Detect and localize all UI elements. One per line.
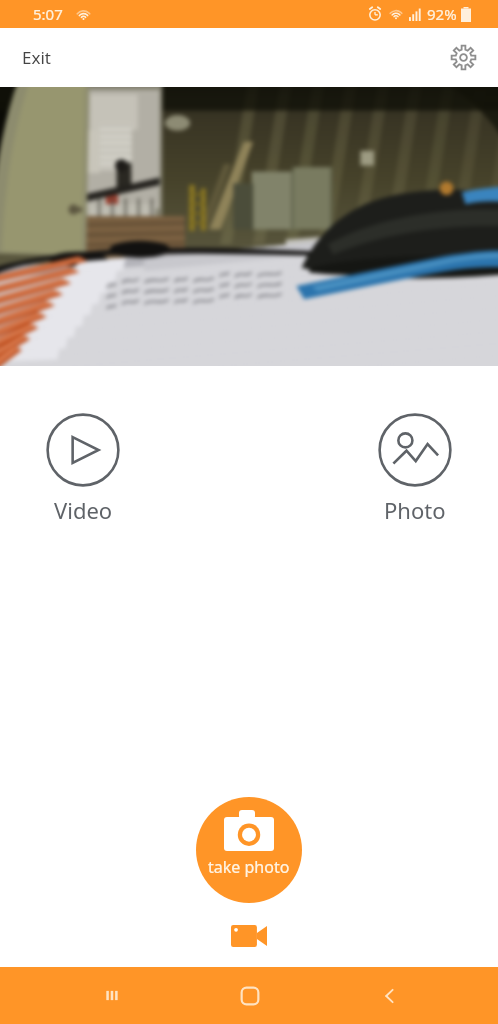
staticText: 5:07 [33, 4, 63, 24]
button[interactable]: Photo [370, 405, 460, 525]
button[interactable]: Record video [225, 919, 273, 953]
button[interactable]: Home [212, 967, 288, 1024]
button[interactable]: Back [352, 967, 428, 1024]
staticText: take photo [208, 856, 290, 878]
staticText: Exit [22, 46, 51, 69]
button[interactable]: take photo [196, 797, 302, 903]
button[interactable]: Settings [436, 32, 498, 83]
staticText: Photo [384, 495, 446, 525]
button[interactable]: Video [38, 405, 128, 525]
staticText: 92% [427, 4, 457, 24]
button[interactable]: Exit [0, 32, 73, 83]
button[interactable]: Recent apps [72, 967, 148, 1024]
staticText: Video [54, 495, 113, 525]
